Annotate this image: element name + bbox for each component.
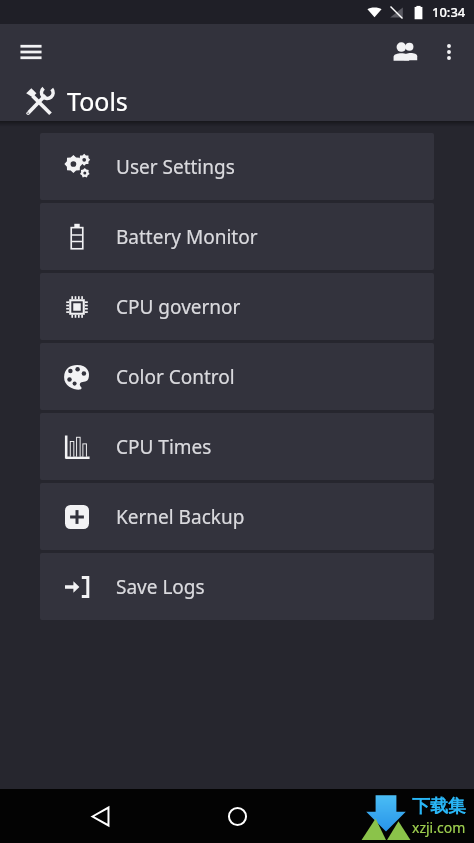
button[interactable]: More options	[428, 31, 470, 73]
staticText: Kernel Backup	[116, 504, 245, 530]
staticText: Save Logs	[116, 574, 205, 600]
button[interactable]: CPU Times	[40, 413, 434, 480]
staticText: CPU governor	[116, 294, 241, 320]
button[interactable]: Home	[215, 794, 259, 838]
button[interactable]: Save Logs	[40, 553, 434, 620]
button[interactable]: Open navigation menu	[8, 29, 54, 75]
staticText: 下载集	[412, 795, 466, 818]
staticText: Color Control	[116, 364, 235, 390]
staticText: 10:34	[432, 3, 466, 21]
button[interactable]: Battery Monitor	[40, 203, 434, 270]
button[interactable]: Color Control	[40, 343, 434, 410]
button[interactable]: Back	[78, 794, 122, 838]
button[interactable]: Profiles	[382, 29, 428, 75]
button[interactable]: Kernel Backup	[40, 483, 434, 550]
staticText: Tools	[67, 84, 128, 118]
staticText: CPU Times	[116, 434, 212, 460]
staticText: User Settings	[116, 154, 235, 180]
staticText: xzji.com	[412, 818, 466, 837]
staticText: Battery Monitor	[116, 224, 258, 250]
button[interactable]: CPU governor	[40, 273, 434, 340]
button[interactable]: User Settings	[40, 133, 434, 200]
